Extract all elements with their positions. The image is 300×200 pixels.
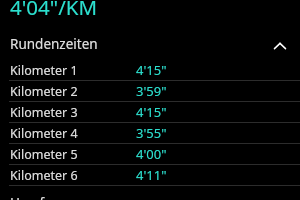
staticText: Rundenzeiten [10, 35, 98, 53]
staticText: 3'59" [136, 82, 300, 100]
button[interactable]: Kilometer 6 [0, 165, 300, 186]
button[interactable]: Rundenzeiten [0, 32, 300, 56]
staticText: Kilometer 6 [10, 167, 78, 184]
staticText: 4'00" [136, 145, 300, 163]
staticText: Kilometer 3 [10, 104, 78, 121]
staticText: 4'04"/KM [10, 0, 98, 21]
button[interactable]: Collapse lap times [268, 34, 292, 58]
button[interactable]: Kilometer 2 [0, 81, 300, 102]
staticText: 4'11" [136, 166, 300, 184]
staticText: 4'15" [136, 103, 300, 121]
button[interactable]: Kilometer 5 [0, 144, 300, 165]
staticText: Kilometer 4 [10, 125, 78, 142]
staticText: Herzfrequenz [10, 194, 97, 200]
staticText: Kilometer 5 [10, 146, 78, 163]
staticText: Kilometer 2 [10, 83, 78, 100]
button[interactable]: Kilometer 4 [0, 123, 300, 144]
button[interactable]: Kilometer 3 [0, 102, 300, 123]
staticText: 4'15" [136, 61, 300, 79]
button[interactable]: Kilometer 1 [0, 60, 300, 81]
staticText: Kilometer 1 [10, 62, 78, 79]
button[interactable]: Herzfrequenz [0, 194, 300, 200]
staticText: 3'55" [136, 124, 300, 142]
